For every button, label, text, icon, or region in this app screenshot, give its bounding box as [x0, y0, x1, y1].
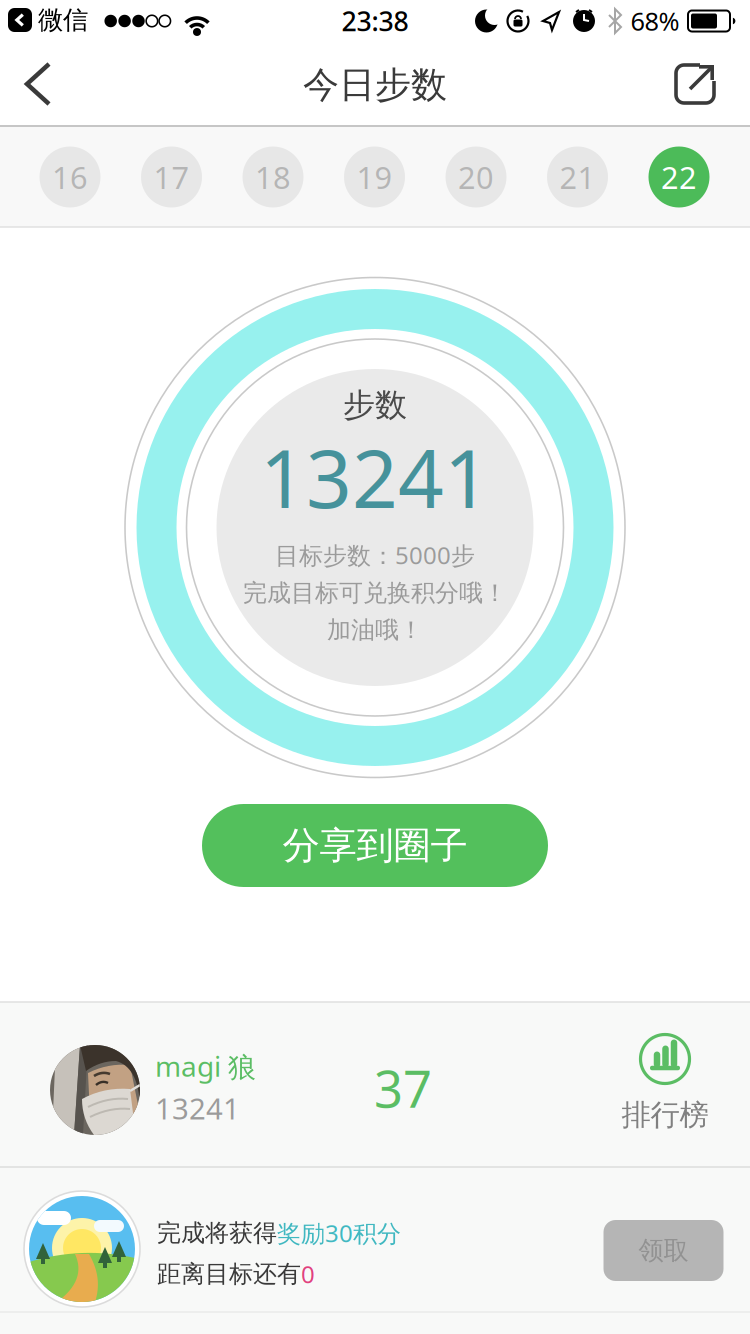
staticText: 今日步数	[303, 63, 447, 107]
button[interactable]: 返回	[23, 61, 53, 107]
staticText: 18	[255, 157, 291, 197]
button[interactable]: 排行榜	[610, 1014, 720, 1144]
staticText: 13241	[260, 424, 490, 530]
staticText: 21	[559, 157, 595, 197]
staticText: 22	[661, 157, 697, 197]
button[interactable]: 17	[141, 146, 202, 207]
button[interactable]: 18	[242, 146, 303, 207]
staticText: 距离目标还有	[157, 1259, 301, 1289]
staticText: 16	[52, 157, 88, 197]
staticText: 完成目标可兑换积分哦！	[243, 578, 507, 608]
button[interactable]: 22	[648, 146, 709, 207]
button[interactable]: 分享	[674, 63, 716, 105]
staticText: 13241	[155, 1088, 240, 1127]
staticText: 奖励30积分	[277, 1217, 401, 1249]
staticText: 目标步数：5000步	[275, 539, 475, 571]
staticText: 完成将获得	[157, 1218, 277, 1248]
button[interactable]: 20	[445, 146, 506, 207]
staticText: 23:38	[341, 3, 408, 39]
button[interactable]: 分享到圈子	[202, 804, 548, 887]
staticText: 领取	[638, 1235, 688, 1266]
button[interactable]: 领取	[603, 1220, 723, 1281]
staticText: 19	[356, 157, 392, 197]
staticText: 17	[153, 157, 189, 197]
staticText: 分享到圈子	[282, 823, 467, 868]
button[interactable]: 21	[547, 146, 608, 207]
staticText: 0	[301, 1258, 315, 1290]
staticText: magi 狼	[155, 1047, 256, 1085]
button[interactable]: 19	[344, 146, 405, 207]
staticText: 加油哦！	[327, 615, 423, 645]
staticText: 37	[374, 1054, 432, 1122]
staticText: 微信	[38, 4, 88, 35]
staticText: 20	[458, 157, 494, 197]
staticText: 排行榜	[621, 1097, 708, 1133]
button[interactable]: 16	[39, 146, 100, 207]
staticText: 68%	[630, 4, 679, 38]
button[interactable]: 返回微信	[8, 8, 32, 32]
staticText: 步数	[343, 385, 407, 425]
